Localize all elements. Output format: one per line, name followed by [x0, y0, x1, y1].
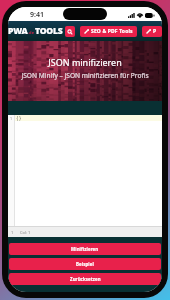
button[interactable]: SEO & PDF Tools [80, 26, 137, 37]
staticText: Beispiel [76, 261, 94, 267]
button[interactable]: Beispiel [9, 258, 161, 270]
staticText: TOOLS [35, 25, 63, 37]
staticText: 1 [11, 230, 14, 235]
staticText: PDF Tools [153, 28, 158, 35]
button[interactable]: PDF Tools [142, 26, 162, 37]
button[interactable]: PWA [8, 25, 64, 37]
staticText: JSON minifizieren [48, 56, 122, 68]
staticText: PWA [8, 25, 28, 37]
staticText: 9:41 [30, 10, 44, 20]
staticText: Col: 1 [20, 230, 31, 235]
staticText: 1 [10, 116, 13, 121]
staticText: Minifizieren [71, 246, 99, 252]
staticText: .de [28, 30, 35, 35]
staticText: {} [16, 115, 22, 121]
button[interactable]: Zurücksetzen [9, 273, 161, 285]
staticText: Zurücksetzen [70, 276, 101, 282]
staticText: SEO & PDF Tools [91, 28, 133, 35]
button[interactable]: Minifizieren [9, 243, 161, 255]
staticText: JSON Minify – JSON minifizieren für Prof… [21, 71, 149, 80]
button[interactable]: Suche [65, 26, 75, 37]
